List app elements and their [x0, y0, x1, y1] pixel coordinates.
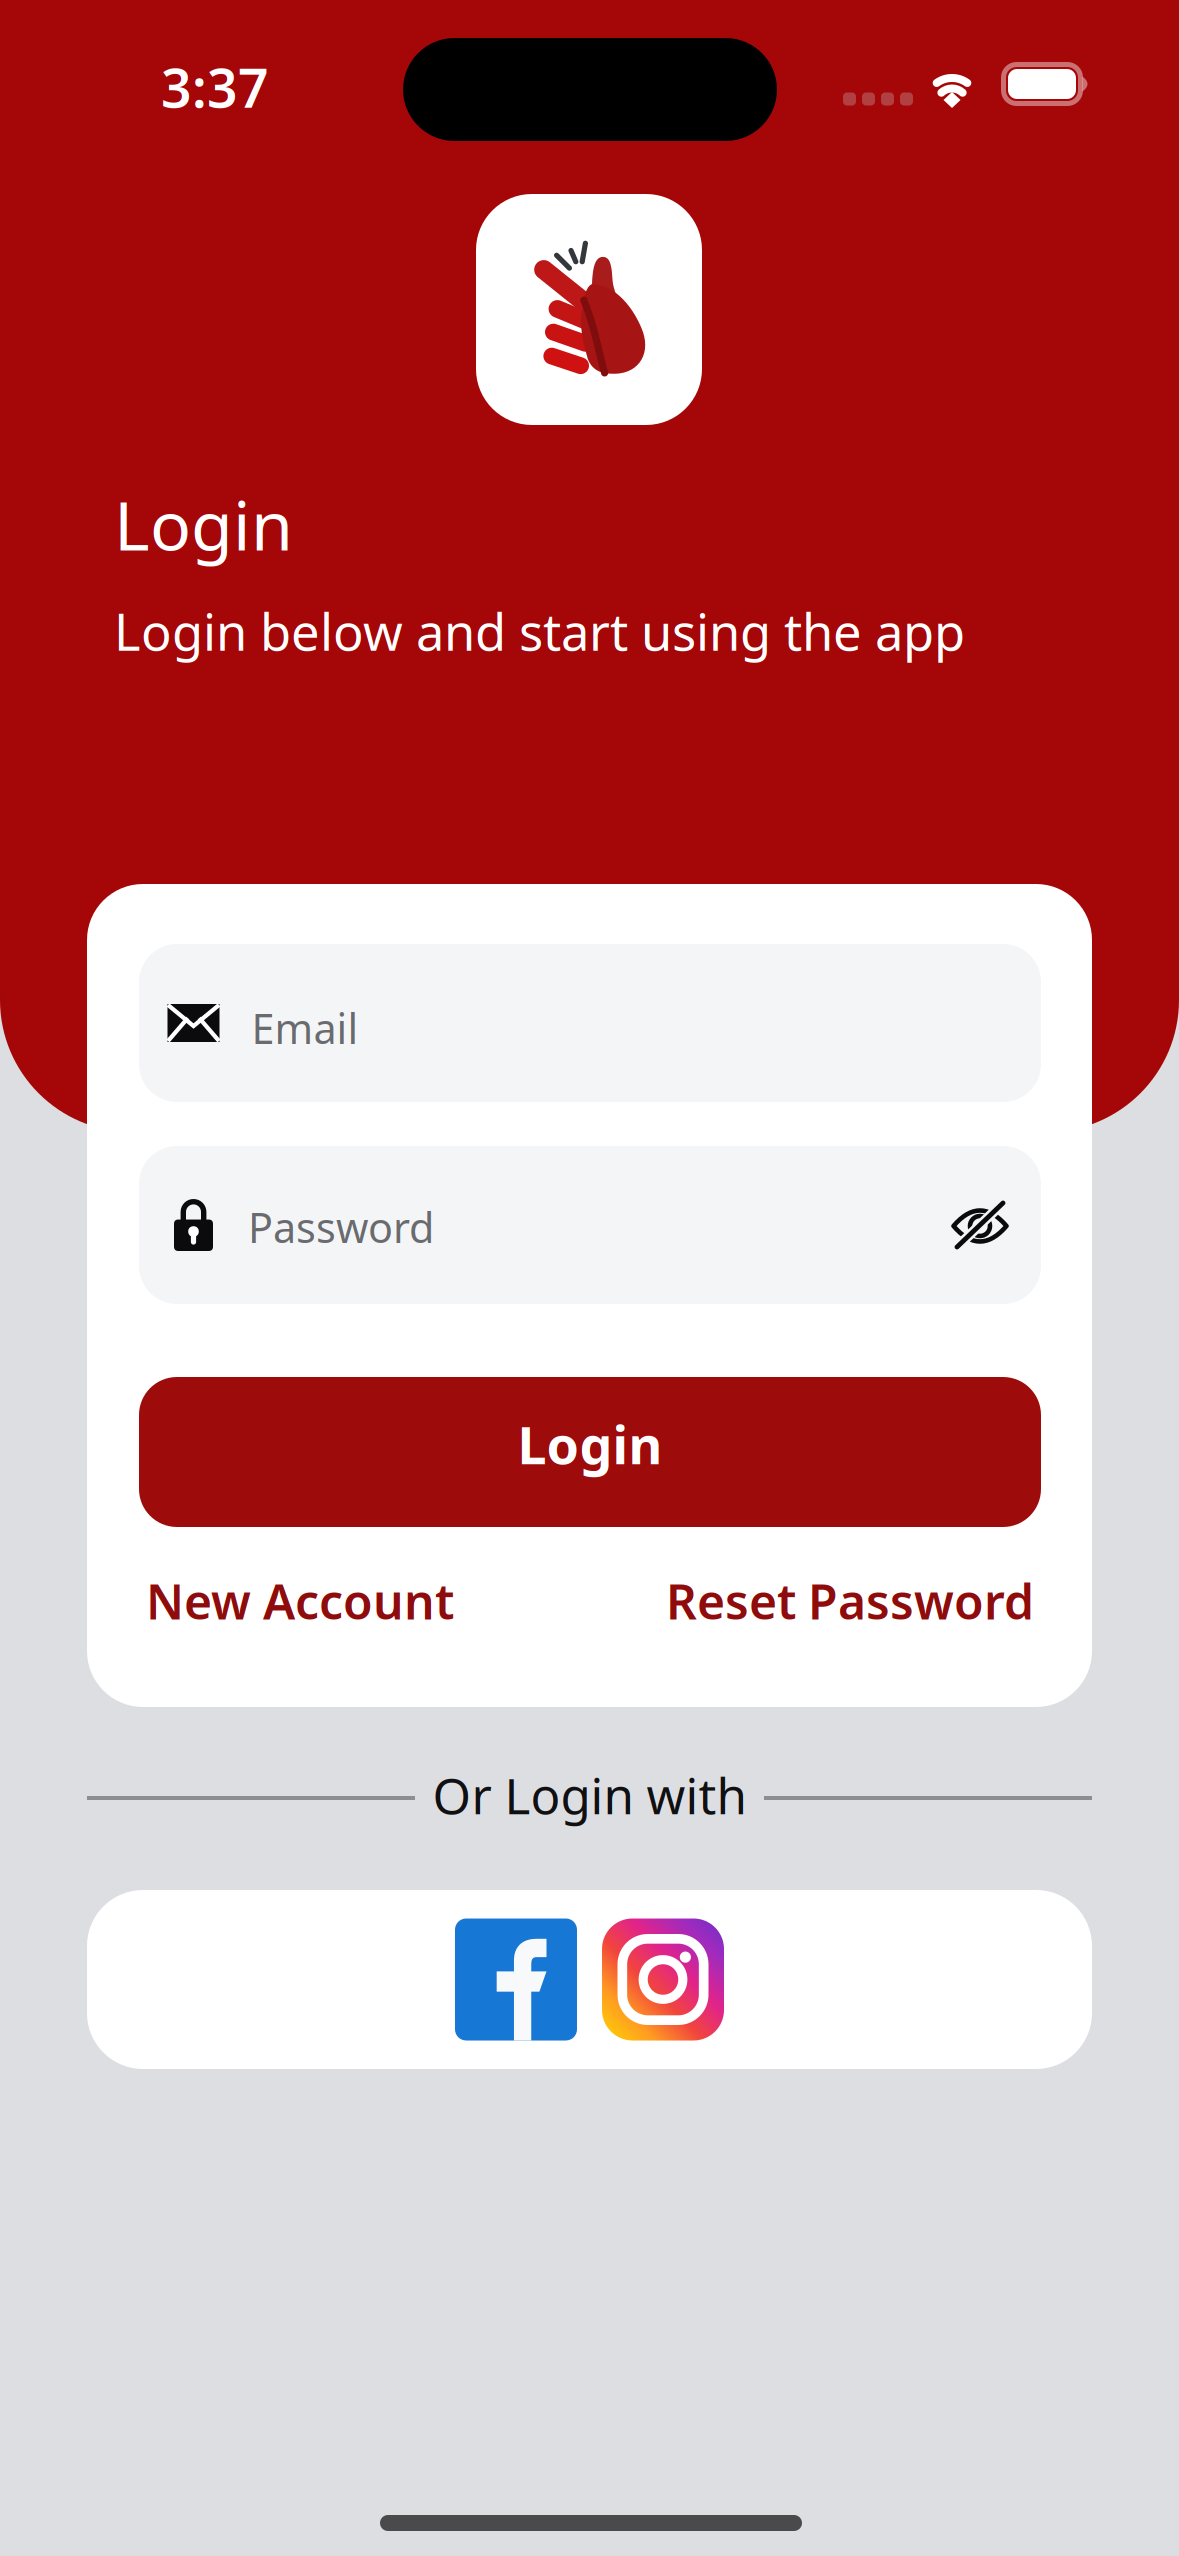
staticText: Reset Password: [666, 1569, 1034, 1633]
button[interactable]: Login: [139, 1377, 1041, 1527]
staticText: Or Login with: [432, 1762, 746, 1828]
button[interactable]: Login with Instagram: [602, 1918, 724, 2040]
staticText: Email: [251, 1001, 358, 1055]
staticText: 3:37: [161, 52, 269, 122]
staticText: Login below and start using the app: [114, 597, 965, 665]
staticText: Login: [517, 1409, 662, 1479]
button[interactable]: Show password: [951, 1202, 1041, 1248]
button[interactable]: Reset Password: [634, 1561, 1034, 1641]
button[interactable]: New Account: [146, 1561, 546, 1641]
staticText: New Account: [146, 1569, 454, 1633]
button[interactable]: Login with Facebook: [455, 1918, 577, 2040]
staticText: Login: [114, 479, 293, 569]
staticText: Password: [248, 1200, 434, 1254]
